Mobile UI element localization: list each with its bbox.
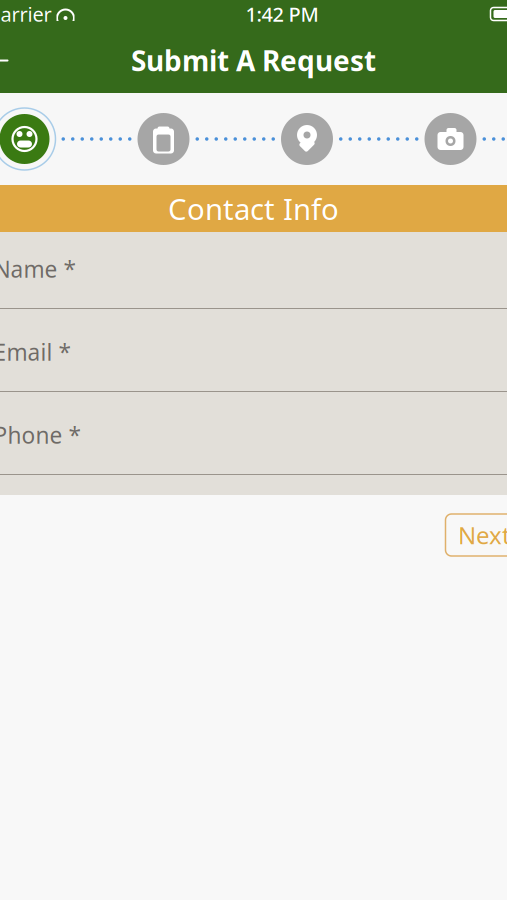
button[interactable]: Photo step — [422, 106, 478, 172]
button[interactable]: Back — [0, 38, 19, 82]
staticText: Next — [458, 519, 507, 551]
button[interactable]: Location step — [279, 106, 335, 172]
button[interactable]: Next — [445, 514, 507, 556]
staticText: Name * — [0, 254, 75, 284]
button[interactable]: Phone * — [0, 420, 507, 475]
staticText: Submit A Request — [131, 42, 376, 79]
button[interactable]: Email * — [0, 337, 507, 392]
staticText: Phone * — [0, 420, 80, 450]
staticText: Contact Info — [168, 189, 339, 228]
button[interactable]: Name * — [0, 254, 507, 309]
staticText: Email * — [0, 337, 70, 367]
staticText: Carrier — [0, 1, 51, 27]
staticText: 1:42 PM — [245, 1, 318, 27]
button[interactable]: Request details step — [135, 106, 191, 172]
button[interactable]: Contact Info step — [0, 106, 57, 172]
